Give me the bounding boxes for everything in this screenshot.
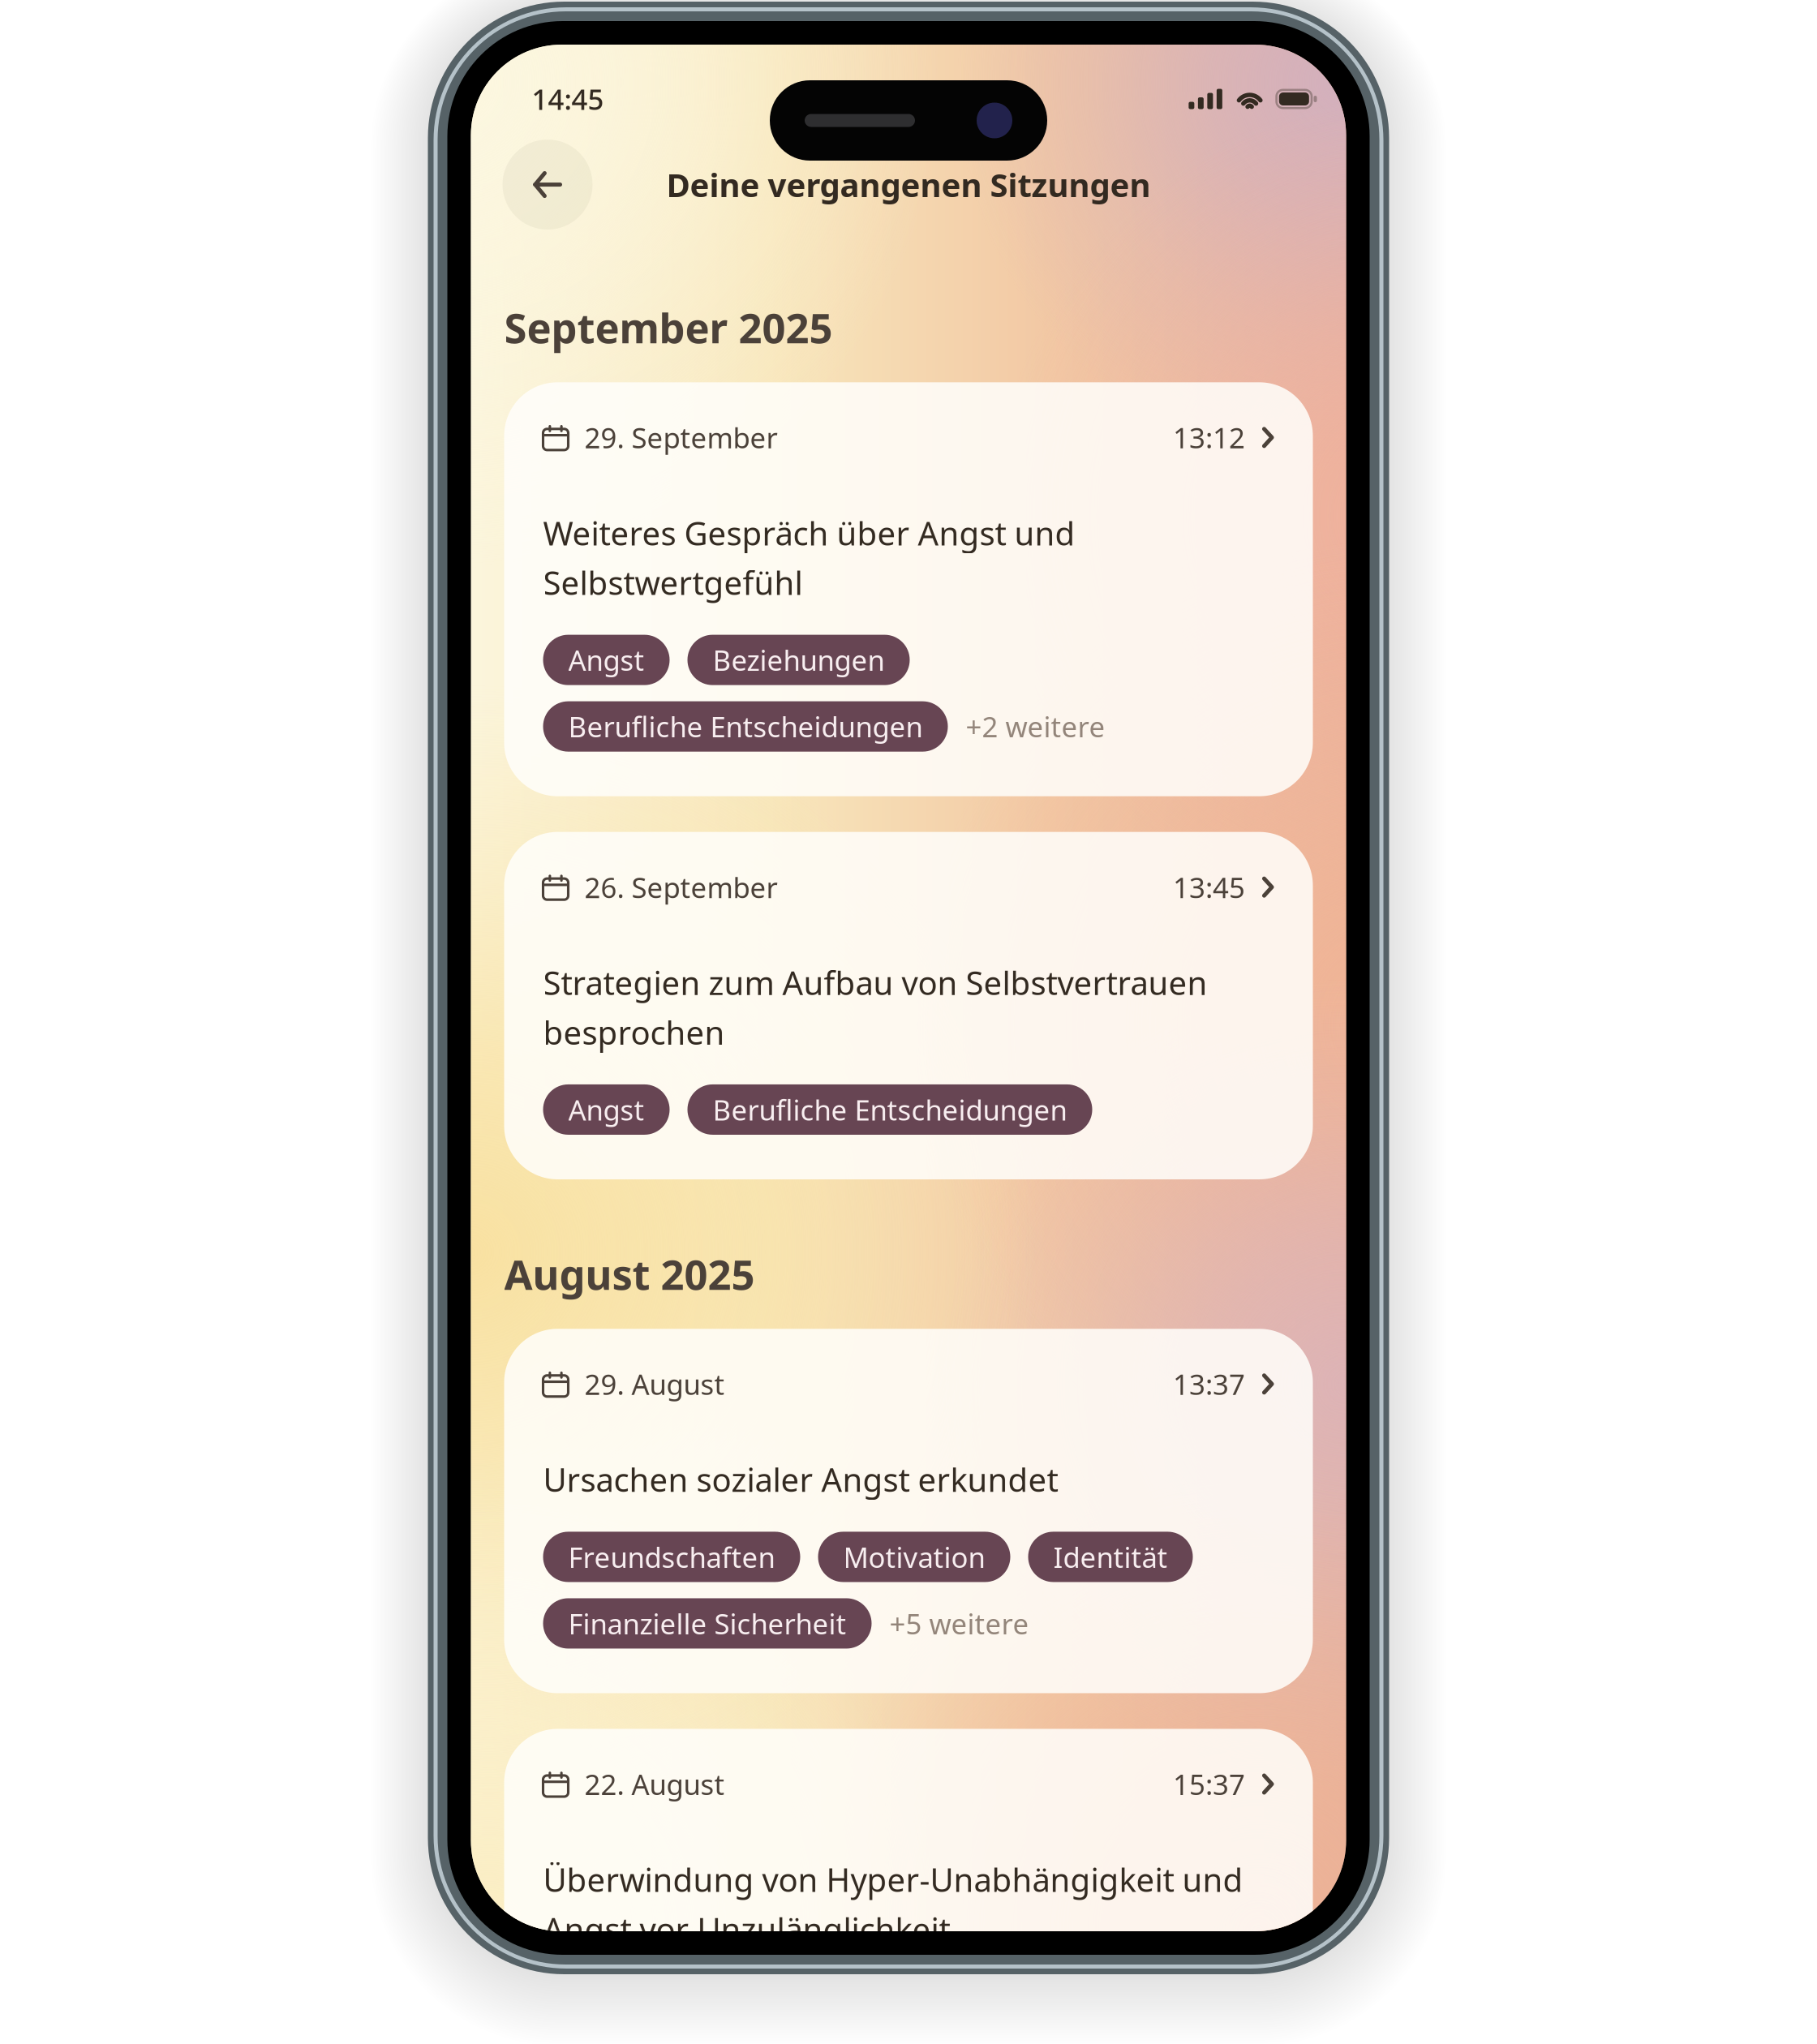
staticText: Angst [568, 641, 644, 679]
staticText: Berufliche Entscheidungen [568, 708, 923, 745]
staticText: +2 weitere [966, 708, 1105, 745]
staticText: 15:37 [1173, 1765, 1245, 1803]
staticText: +5 weitere [889, 1605, 1029, 1642]
staticText: 14:45 [532, 80, 604, 118]
staticText: Ursachen sozialer Angst erkundet [543, 1458, 1058, 1501]
staticText: Motivation [843, 1538, 985, 1576]
staticText: 26. September [584, 868, 777, 906]
staticText: 13:12 [1173, 419, 1245, 456]
staticText: Beziehungen [713, 641, 885, 679]
staticText: 13:45 [1173, 868, 1245, 906]
button[interactable]: Zurück [503, 140, 593, 230]
staticText: Freundschaften [568, 1538, 775, 1576]
staticText: 22. August [584, 1765, 725, 1803]
staticText: September 2025 [504, 300, 833, 355]
button[interactable]: 26. September [504, 832, 1313, 1179]
staticText: 29. August [584, 1365, 725, 1403]
button[interactable]: 29. September [504, 382, 1313, 796]
staticText: 29. September [584, 419, 777, 456]
staticText: Strategien zum Aufbau von Selbstvertraue… [543, 961, 1207, 1054]
staticText: Selbstwert [568, 1988, 709, 2025]
staticText: Überwindung von Hyper-Unabhängigkeit und… [543, 1858, 1243, 1950]
staticText: Angst [568, 1091, 644, 1128]
staticText: 13:37 [1173, 1365, 1245, 1403]
staticText: Berufliche Entscheidungen [713, 1091, 1067, 1128]
staticText: Identität [1053, 1538, 1168, 1576]
staticText: August 2025 [504, 1247, 755, 1301]
button[interactable]: 29. August [504, 1329, 1313, 1693]
staticText: Beziehungen [777, 1988, 949, 2025]
staticText: Finanzielle Sicherheit [568, 1605, 846, 1642]
button[interactable]: 22. August [504, 1729, 1313, 2044]
staticText: Deine vergangenen Sitzungen [666, 163, 1151, 206]
staticText: Weiteres Gespräch über Angst und Selbstw… [543, 511, 1075, 604]
